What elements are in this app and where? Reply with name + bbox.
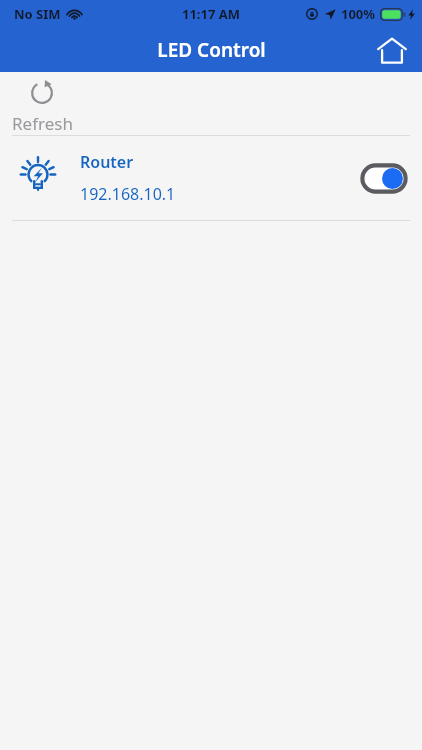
button[interactable]: Toggle LED: [356, 158, 412, 198]
button[interactable]: Refresh: [6, 80, 78, 135]
staticText: Refresh: [12, 112, 73, 135]
staticText: 192.168.10.1: [80, 183, 176, 205]
staticText: LED Control: [157, 37, 266, 63]
button[interactable]: Home: [370, 28, 414, 72]
staticText: 100%: [341, 5, 376, 23]
staticText: Router: [80, 151, 134, 173]
staticText: 11:17 AM: [182, 5, 241, 23]
button[interactable]: Router: [0, 136, 422, 220]
staticText: No SIM: [14, 5, 61, 23]
